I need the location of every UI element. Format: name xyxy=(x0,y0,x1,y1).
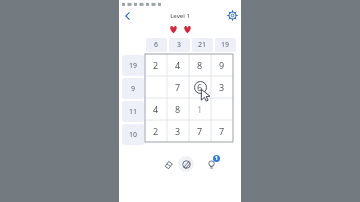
button[interactable]: 7 xyxy=(167,76,189,98)
button[interactable]: 9 xyxy=(211,54,233,76)
staticText: 7 xyxy=(219,125,225,137)
staticText: 3 xyxy=(175,125,181,137)
button[interactable]: 8 xyxy=(189,54,211,76)
button[interactable] xyxy=(211,98,233,120)
staticText: 11 xyxy=(129,107,138,117)
button[interactable]: 4 xyxy=(167,54,189,76)
button[interactable]: 8 xyxy=(167,98,189,120)
staticText: 9 xyxy=(131,84,136,94)
button[interactable]: 3 xyxy=(211,76,233,98)
button[interactable]: Hint xyxy=(203,156,219,172)
staticText: 10 xyxy=(129,130,138,140)
staticText: 1 xyxy=(215,155,218,162)
staticText: 21 xyxy=(198,40,207,50)
staticText: 6 xyxy=(197,81,203,93)
staticText: 8 xyxy=(175,103,181,115)
staticText: 19 xyxy=(129,61,138,71)
button[interactable]: Settings xyxy=(227,10,238,21)
button[interactable]: 7 xyxy=(211,120,233,142)
button[interactable]: 6 xyxy=(146,38,167,52)
button[interactable]: 2 xyxy=(145,54,167,76)
button[interactable]: 10 xyxy=(122,124,144,145)
button[interactable]: 7 xyxy=(189,120,211,142)
button[interactable]: 9 xyxy=(122,78,144,99)
button[interactable]: 3 xyxy=(169,38,190,52)
staticText: 4 xyxy=(175,59,181,71)
button[interactable]: 1 xyxy=(189,98,211,120)
staticText: 4 xyxy=(153,103,159,115)
staticText: 7 xyxy=(197,125,203,137)
button[interactable]: Eraser xyxy=(161,157,176,172)
button[interactable]: 11 xyxy=(122,101,144,122)
button[interactable]: Pencil xyxy=(178,156,194,172)
button[interactable]: 19 xyxy=(215,38,236,52)
button[interactable]: Back xyxy=(121,10,133,22)
button[interactable]: 4 xyxy=(145,98,167,120)
staticText: 3 xyxy=(219,81,225,93)
button[interactable] xyxy=(145,76,167,98)
button[interactable]: 2 xyxy=(145,120,167,142)
staticText: 2 xyxy=(153,125,159,137)
staticText: 19 xyxy=(221,40,230,50)
staticText: 6 xyxy=(154,40,159,50)
staticText: 1 xyxy=(197,103,203,115)
staticText: 9 xyxy=(219,59,225,71)
button[interactable]: 21 xyxy=(192,38,213,52)
button[interactable]: 3 xyxy=(167,120,189,142)
staticText: 7 xyxy=(175,81,181,93)
staticText: 3 xyxy=(177,40,182,50)
button[interactable]: 19 xyxy=(122,55,144,76)
staticText: 2 xyxy=(153,59,159,71)
button[interactable]: 6 xyxy=(189,76,211,98)
staticText: Level 1 xyxy=(170,12,190,20)
staticText: 8 xyxy=(197,59,203,71)
